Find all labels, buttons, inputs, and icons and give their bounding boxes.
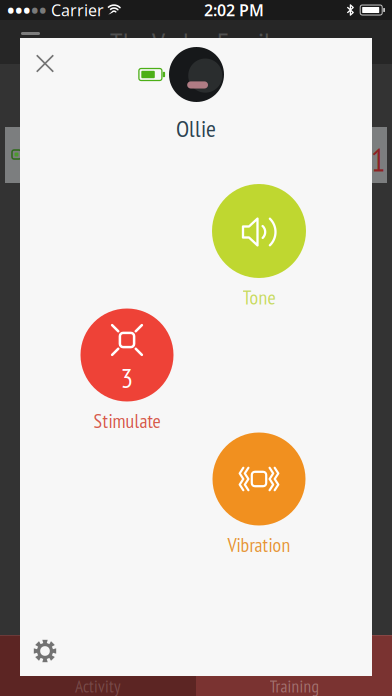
- staticText: Vibration: [227, 532, 290, 557]
- button[interactable]: Tone: [212, 184, 306, 278]
- button[interactable]: Close: [22, 40, 68, 86]
- button[interactable]: Settings: [22, 628, 68, 674]
- staticText: 3: [120, 359, 133, 396]
- staticText: 2:02 PM: [204, 0, 264, 21]
- staticText: Training: [269, 675, 318, 696]
- button[interactable]: 3: [80, 308, 173, 401]
- staticText: Stimulate: [93, 408, 160, 433]
- staticText: 1: [371, 139, 385, 180]
- button[interactable]: Vibration: [212, 432, 305, 525]
- staticText: Activity: [75, 675, 121, 696]
- staticText: •••: [7, 0, 31, 23]
- staticText: Ollie: [176, 112, 216, 144]
- staticText: ••: [31, 0, 47, 23]
- staticText: The Varley Family: [110, 24, 282, 60]
- staticText: Carrier: [47, 0, 104, 21]
- staticText: Tone: [242, 284, 275, 310]
